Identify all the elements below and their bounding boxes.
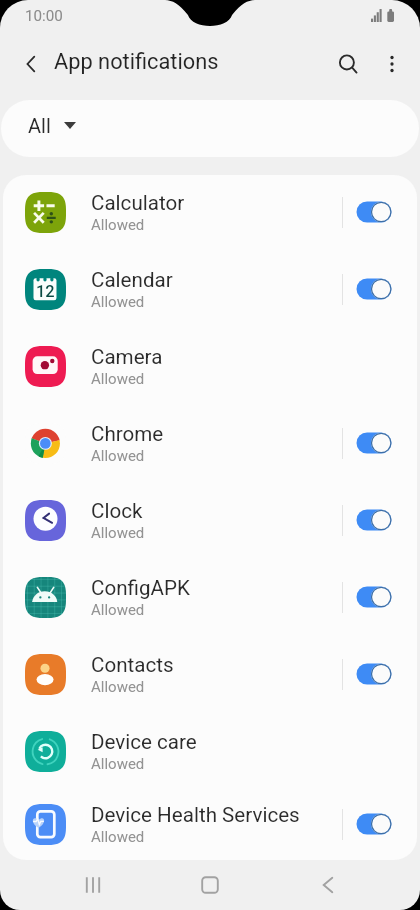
staticText: Device care xyxy=(91,730,197,754)
staticText: Calculator xyxy=(91,191,185,215)
button[interactable]: Clock xyxy=(3,483,417,560)
staticText: Calendar xyxy=(91,268,173,292)
button[interactable]: Search xyxy=(326,42,370,86)
button[interactable]: Home xyxy=(151,860,269,910)
staticText: 10:00 xyxy=(25,7,63,25)
staticText: Camera xyxy=(91,345,163,369)
staticText: Allowed xyxy=(91,678,145,696)
staticText: 12 xyxy=(36,282,55,301)
button[interactable]: Back xyxy=(269,860,387,910)
button[interactable] xyxy=(348,804,400,844)
button[interactable] xyxy=(348,654,400,694)
staticText: Allowed xyxy=(91,755,145,773)
button[interactable] xyxy=(348,269,400,309)
staticText: Allowed xyxy=(91,828,145,846)
button[interactable] xyxy=(348,577,400,617)
staticText: Chrome xyxy=(91,422,164,446)
staticText: Clock xyxy=(91,499,143,523)
staticText: Device Health Services xyxy=(91,803,300,827)
button[interactable]: Calculator xyxy=(3,175,417,252)
button[interactable]: Recents xyxy=(34,860,151,910)
button[interactable] xyxy=(348,500,400,540)
staticText: Allowed xyxy=(91,370,145,388)
button[interactable]: All xyxy=(1,100,419,157)
staticText: Allowed xyxy=(91,601,145,619)
staticText: Contacts xyxy=(91,653,174,677)
button[interactable]: Device care xyxy=(3,714,417,791)
staticText: Allowed xyxy=(91,293,145,311)
button[interactable] xyxy=(348,423,400,463)
staticText: Allowed xyxy=(91,216,145,234)
staticText: App notifications xyxy=(54,49,219,75)
button[interactable]: Device Health Services xyxy=(3,791,417,860)
button[interactable]: 12 xyxy=(3,252,417,329)
button[interactable]: Contacts xyxy=(3,637,417,714)
button[interactable]: More options xyxy=(370,42,414,86)
button[interactable]: Chrome xyxy=(3,406,417,483)
button[interactable] xyxy=(348,192,400,232)
button[interactable]: ConfigAPK xyxy=(3,560,417,637)
staticText: All xyxy=(28,114,51,137)
staticText: Allowed xyxy=(91,447,145,465)
button[interactable]: Navigate up xyxy=(10,43,52,85)
staticText: Allowed xyxy=(91,524,145,542)
staticText: ConfigAPK xyxy=(91,576,190,600)
button[interactable]: Camera xyxy=(3,329,417,406)
